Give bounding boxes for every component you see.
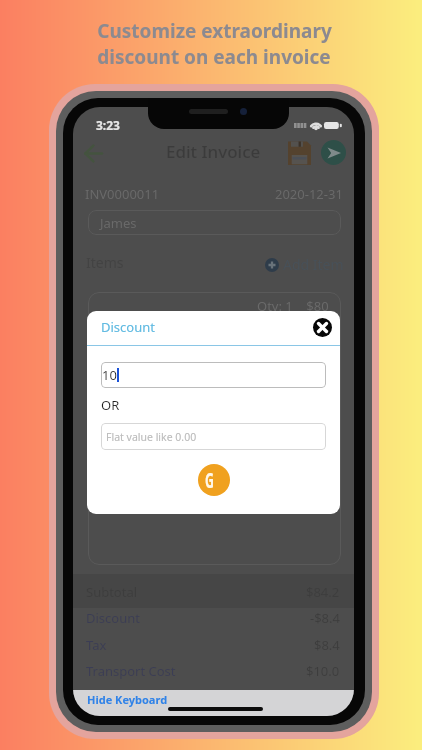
button[interactable]: 10 [101, 362, 326, 388]
staticText: 10 [102, 366, 117, 384]
button[interactable]: Add Item [265, 255, 344, 274]
button[interactable]: Hide Keyboard [87, 692, 168, 707]
button[interactable]: Flat value like 0.00 [101, 423, 326, 450]
staticText: discount on each invoice [97, 44, 331, 70]
staticText: 2020-12-31 [275, 185, 343, 203]
button[interactable]: Save [283, 135, 316, 169]
button[interactable]: Close [309, 314, 335, 340]
staticText: Qty: 1 $80 [257, 297, 329, 315]
staticText: Discount [101, 318, 155, 336]
staticText: James [100, 214, 137, 232]
button[interactable]: James [88, 210, 341, 235]
staticText: -$8.4 [310, 609, 340, 627]
staticText: Items [86, 253, 124, 272]
staticText: Tax [86, 636, 107, 654]
staticText: Discount [86, 609, 140, 627]
staticText: Flat value like 0.00 [106, 430, 197, 444]
staticText: 3:23 [96, 117, 120, 133]
staticText: Customize extraordinary [97, 18, 332, 44]
button[interactable]: Send [317, 136, 350, 169]
staticText: $8.4 [314, 636, 340, 654]
button[interactable]: Back [76, 136, 110, 170]
staticText: OR [101, 396, 120, 414]
staticText: INV0000011 [85, 185, 160, 203]
staticText: $10.0 [306, 662, 340, 680]
staticText: Edit Invoice [166, 140, 261, 163]
staticText: GO [205, 464, 223, 496]
staticText: Transport Cost [86, 662, 176, 680]
staticText: Add Item [283, 255, 344, 274]
button[interactable]: GO [198, 464, 230, 496]
